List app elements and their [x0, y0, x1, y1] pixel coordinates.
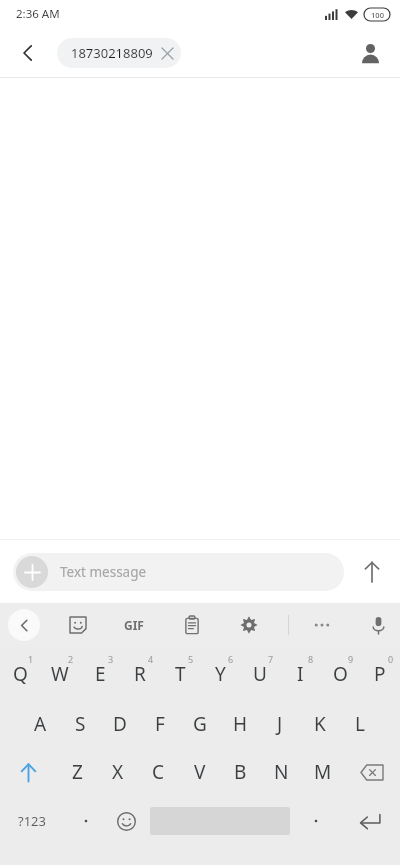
- button[interactable]: Voice input: [358, 605, 398, 645]
- button[interactable]: Comma: [66, 799, 106, 843]
- button[interactable]: Y: [200, 650, 240, 698]
- button[interactable]: B: [220, 750, 261, 794]
- button[interactable]: R: [120, 650, 160, 698]
- button[interactable]: Back: [8, 33, 48, 73]
- staticText: 2:36 AM: [16, 6, 60, 22]
- staticText: N: [274, 759, 289, 785]
- button[interactable]: C: [138, 750, 179, 794]
- staticText: 6: [228, 653, 234, 665]
- staticText: 1: [28, 653, 34, 665]
- staticText: 3: [108, 653, 114, 665]
- staticText: S: [75, 711, 86, 737]
- staticText: F: [155, 711, 165, 737]
- staticText: 18730218809: [71, 44, 153, 62]
- button[interactable]: I: [280, 650, 320, 698]
- staticText: GIF: [124, 617, 144, 633]
- button[interactable]: Clipboard: [172, 605, 212, 645]
- staticText: X: [112, 759, 124, 785]
- staticText: Z: [72, 759, 83, 785]
- button[interactable]: Settings: [229, 605, 269, 645]
- button[interactable]: U: [240, 650, 280, 698]
- staticText: C: [152, 759, 165, 785]
- button[interactable]: Z: [57, 750, 97, 794]
- button[interactable]: D: [100, 702, 140, 746]
- button[interactable]: Stickers: [58, 605, 98, 645]
- staticText: E: [95, 661, 106, 687]
- staticText: Q: [13, 661, 28, 687]
- staticText: H: [233, 711, 248, 737]
- staticText: U: [253, 661, 267, 687]
- staticText: 9: [348, 653, 354, 665]
- button[interactable]: W: [40, 650, 80, 698]
- button[interactable]: A: [20, 702, 60, 746]
- button[interactable]: Q: [0, 650, 40, 698]
- button[interactable]: ?123: [4, 799, 60, 843]
- staticText: ?123: [18, 812, 46, 830]
- button[interactable]: K: [300, 702, 340, 746]
- button[interactable]: Send: [344, 544, 400, 600]
- staticText: D: [113, 711, 127, 737]
- button[interactable]: Emoji: [104, 799, 148, 843]
- staticText: T: [175, 661, 186, 687]
- button[interactable]: Shift: [0, 750, 57, 794]
- staticText: V: [194, 759, 206, 785]
- staticText: 5: [188, 653, 194, 665]
- button[interactable]: V: [179, 750, 220, 794]
- button[interactable]: 18730218809: [57, 38, 181, 68]
- button[interactable]: Contact details: [350, 33, 390, 73]
- button[interactable]: GIF: [114, 605, 154, 645]
- staticText: R: [134, 661, 146, 687]
- button[interactable]: X: [97, 750, 138, 794]
- staticText: 0: [388, 653, 394, 665]
- staticText: L: [355, 711, 365, 737]
- button[interactable]: O: [320, 650, 360, 698]
- staticText: I: [297, 661, 304, 687]
- button[interactable]: Add attachment: [16, 556, 48, 588]
- button[interactable]: E: [80, 650, 120, 698]
- staticText: P: [374, 661, 386, 687]
- button[interactable]: Close toolbar: [8, 609, 40, 641]
- button[interactable]: Backspace: [343, 750, 400, 794]
- staticText: B: [234, 759, 247, 785]
- staticText: O: [333, 661, 348, 687]
- button[interactable]: More options: [302, 605, 342, 645]
- staticText: 100: [371, 10, 384, 20]
- button[interactable]: Period: [296, 799, 336, 843]
- staticText: 4: [148, 653, 154, 665]
- button[interactable]: G: [180, 702, 220, 746]
- button[interactable]: M: [302, 750, 343, 794]
- button[interactable]: J: [260, 702, 300, 746]
- button[interactable]: T: [160, 650, 200, 698]
- staticText: 8: [308, 653, 314, 665]
- button[interactable]: H: [220, 702, 260, 746]
- staticText: 2: [68, 653, 74, 665]
- button[interactable]: Enter: [344, 799, 396, 843]
- staticText: G: [193, 711, 207, 737]
- button[interactable]: L: [340, 702, 380, 746]
- button[interactable]: Add attachment: [13, 553, 344, 591]
- button[interactable]: P: [360, 650, 400, 698]
- staticText: W: [51, 661, 69, 687]
- button[interactable]: S: [60, 702, 100, 746]
- staticText: K: [314, 711, 326, 737]
- staticText: M: [314, 759, 332, 785]
- button[interactable]: F: [140, 702, 180, 746]
- staticText: 7: [268, 653, 274, 665]
- staticText: Y: [215, 661, 226, 687]
- staticText: Text message: [60, 563, 147, 581]
- staticText: A: [34, 711, 47, 737]
- staticText: J: [277, 711, 283, 737]
- button[interactable]: N: [261, 750, 302, 794]
